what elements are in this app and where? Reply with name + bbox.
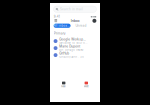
staticText: Re: Design review — [59, 49, 83, 52]
button[interactable]: Mail — [52, 82, 75, 88]
button[interactable]: All inboxes — [54, 24, 71, 28]
button[interactable]: Meet — [75, 82, 98, 88]
staticText: Primary — [54, 31, 66, 35]
button[interactable]: Unread — [74, 24, 89, 28]
staticText: Mail — [61, 85, 66, 88]
button[interactable]: Menu — [54, 19, 58, 23]
staticText: Marie Dupont — [59, 44, 80, 48]
staticText: GitHub — [59, 51, 69, 55]
staticText: Security alert · 2h — [59, 56, 84, 59]
staticText: All inboxes — [54, 24, 71, 27]
staticText: Meet — [84, 85, 89, 88]
staticText: Google Workspace — [59, 37, 87, 41]
button[interactable]: Marie Dupont — [50, 45, 100, 52]
button[interactable]: GitHub — [50, 52, 100, 59]
staticText: 9:41 — [54, 15, 60, 18]
button[interactable]: Google Workspace — [50, 38, 100, 45]
button[interactable]: Primary — [50, 31, 66, 35]
button[interactable]: Account — [92, 19, 96, 23]
button[interactable]: Search in mail — [53, 6, 96, 12]
staticText: Welcome to your new — [59, 42, 87, 45]
staticText: Search in mail — [60, 7, 83, 11]
staticText: Inbox — [71, 19, 80, 23]
staticText: Unread — [76, 24, 87, 27]
